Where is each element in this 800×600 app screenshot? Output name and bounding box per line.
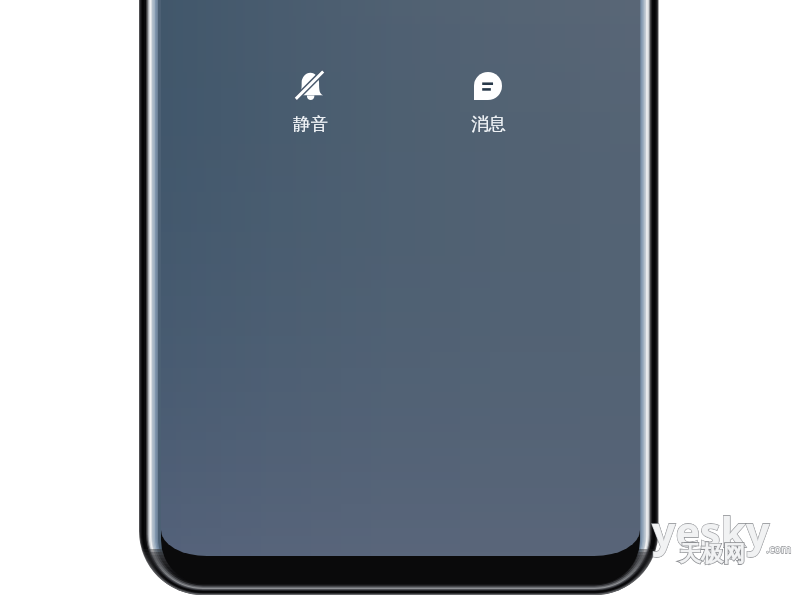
staticText: 消息 <box>471 113 506 135</box>
button[interactable]: Mute <box>267 71 353 141</box>
staticText: 静音 <box>293 113 328 135</box>
staticText: 天极网 <box>679 540 745 568</box>
staticText: 天极网 <box>679 540 745 568</box>
staticText: yesky <box>652 503 770 559</box>
button[interactable]: Messages <box>445 71 531 141</box>
staticText: yesky <box>652 503 770 559</box>
staticText: .com <box>766 541 792 556</box>
staticText: .com <box>766 541 792 556</box>
